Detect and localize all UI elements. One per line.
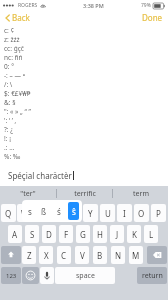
staticText: space: [76, 271, 95, 281]
staticText: .: …: [4, 143, 15, 152]
staticText: N: [115, 250, 122, 261]
staticText: F: [64, 229, 69, 240]
button[interactable]: C: [57, 246, 71, 264]
staticText: 123: [6, 272, 17, 280]
button[interactable]: ß: [39, 202, 49, 220]
staticText: &: §: [4, 98, 16, 107]
button[interactable]: D: [42, 225, 56, 243]
button[interactable]: Shift: [1, 246, 21, 264]
staticText: 3:38 PM: [83, 2, 104, 9]
staticText: nc: ñń: [4, 53, 23, 62]
staticText: V: [80, 250, 85, 261]
staticText: B: [97, 250, 103, 261]
button[interactable]: "ter": [0, 186, 56, 201]
staticText: U: [105, 208, 111, 219]
button[interactable]: M: [129, 246, 143, 264]
button[interactable]: space: [55, 267, 115, 284]
staticText: C: [61, 250, 67, 261]
staticText: D: [46, 229, 52, 240]
staticText: ß: [41, 206, 47, 217]
button[interactable]: E: [33, 204, 48, 222]
button[interactable]: X: [39, 246, 53, 264]
button[interactable]: J: [110, 225, 124, 243]
staticText: G: [80, 229, 86, 240]
staticText: I: [123, 208, 126, 219]
button[interactable]: s: [22, 200, 82, 222]
staticText: terrific: [74, 189, 96, 199]
button[interactable]: Q: [1, 204, 16, 222]
staticText: K: [132, 229, 137, 240]
staticText: ': ‘ ’ ‚: [4, 116, 17, 125]
button[interactable]: R: [49, 204, 64, 222]
staticText: -: – — •: [4, 71, 26, 80]
staticText: Z: [27, 250, 32, 261]
button[interactable]: F: [59, 225, 73, 243]
staticText: Back: [12, 12, 30, 23]
button[interactable]: ś: [53, 202, 64, 220]
button[interactable]: A: [8, 225, 22, 243]
staticText: %: ‰: [4, 152, 21, 161]
staticText: c: ¢: [4, 26, 15, 35]
button[interactable]: K: [127, 225, 141, 243]
button[interactable]: O: [134, 204, 149, 222]
button[interactable]: B: [93, 246, 107, 264]
staticText: X: [44, 250, 49, 261]
staticText: S: [30, 229, 35, 240]
staticText: T: [71, 208, 76, 219]
staticText: term: [133, 189, 149, 199]
staticText: J: [116, 229, 119, 240]
staticText: 79%: [141, 2, 151, 9]
staticText: M: [132, 250, 140, 261]
button[interactable]: Spéçial charäctèr: [0, 165, 168, 186]
button[interactable]: terrific: [57, 186, 112, 201]
staticText: 0: °: [4, 62, 14, 71]
button[interactable]: 123: [1, 267, 21, 284]
staticText: R: [54, 208, 59, 219]
button[interactable]: return: [137, 267, 167, 284]
staticText: ŝ: [72, 206, 76, 217]
button[interactable]: Emoji: [22, 267, 39, 284]
staticText: L: [149, 229, 154, 240]
button[interactable]: Done: [140, 11, 165, 24]
button[interactable]: P: [151, 204, 166, 222]
staticText: W: [21, 208, 29, 219]
staticText: cc: ǵçĉ: [4, 44, 24, 53]
staticText: Spéçial charäctèr: [8, 170, 72, 181]
button[interactable]: U: [100, 204, 115, 222]
staticText: A: [12, 229, 18, 240]
staticText: ś: [57, 206, 61, 217]
staticText: Y: [88, 208, 93, 219]
button[interactable]: T: [66, 204, 81, 222]
button[interactable]: S: [25, 225, 39, 243]
button[interactable]: H: [93, 225, 107, 243]
staticText: ROGERS: [18, 2, 38, 9]
staticText: "ter": [20, 189, 36, 199]
button[interactable]: Y: [83, 204, 98, 222]
staticText: Done: [142, 12, 163, 23]
button[interactable]: I: [117, 204, 132, 222]
staticText: E: [38, 208, 43, 219]
staticText: s: [28, 206, 32, 217]
button[interactable]: ŝ: [68, 202, 79, 220]
staticText: ?: ¿: [4, 125, 14, 134]
staticText: $: €£¥₩₱: [4, 89, 31, 98]
staticText: O: [138, 208, 145, 219]
staticText: H: [97, 229, 103, 240]
button[interactable]: Dictation: [40, 267, 54, 284]
button[interactable]: term: [113, 186, 168, 201]
button[interactable]: W: [17, 204, 32, 222]
button[interactable]: Back: [3, 11, 32, 24]
button[interactable]: L: [144, 225, 158, 243]
button[interactable]: N: [111, 246, 125, 264]
staticText: P: [156, 208, 161, 219]
staticText: Q: [5, 208, 12, 219]
button[interactable]: Backspace: [147, 246, 167, 264]
button[interactable]: G: [76, 225, 90, 243]
staticText: z: žźż: [4, 35, 20, 44]
button[interactable]: V: [75, 246, 89, 264]
staticText: /: \: [4, 80, 13, 89]
button[interactable]: s: [25, 202, 35, 220]
staticText: !: ¡: [4, 134, 11, 143]
staticText: ": « » „ “ ”: [4, 107, 31, 116]
button[interactable]: Z: [22, 246, 36, 264]
